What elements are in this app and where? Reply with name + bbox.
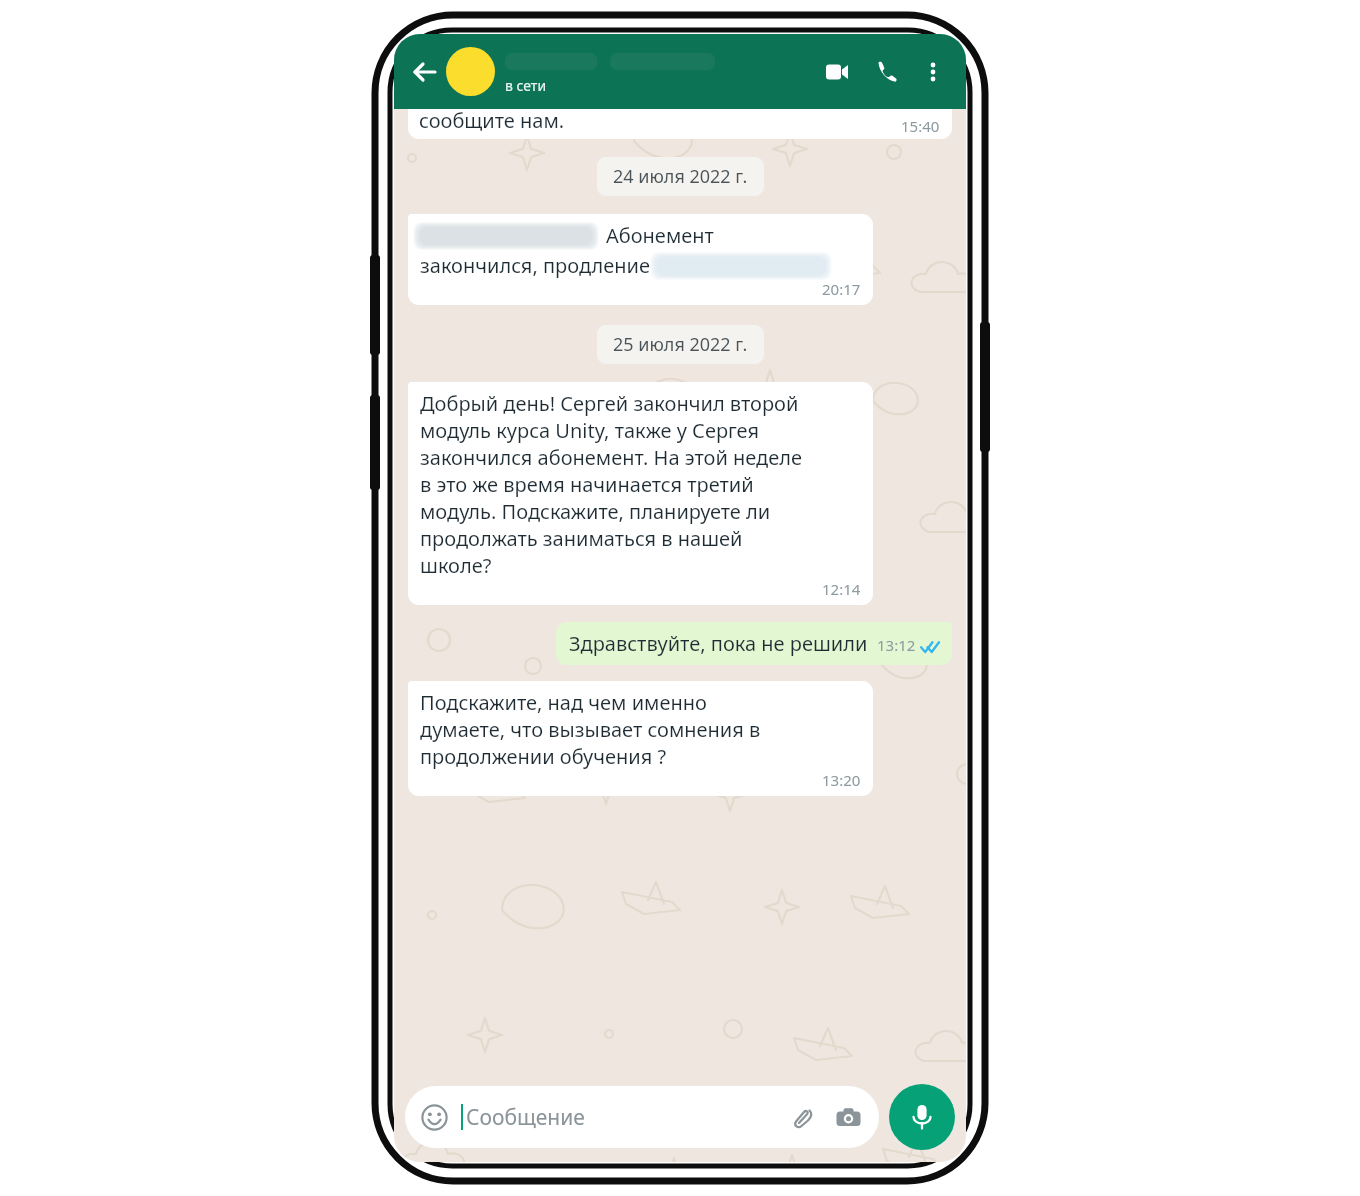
staticText: Подскажите, над чем именно думаете, что … [420,689,761,770]
staticText: Здравствуйте, пока не решили [569,630,868,657]
button[interactable]: Back [406,53,444,91]
button[interactable]: 25 июля 2022 г. [597,325,764,364]
button[interactable]: Добрый день! Сергей закончил второй моду… [408,382,873,605]
staticText: 12:14 [822,579,861,599]
staticText: закончился, продление [420,252,651,279]
button[interactable]: Attach [787,1100,821,1134]
button[interactable]: Camera [831,1100,865,1134]
staticText: 13:20 [822,770,861,790]
button[interactable]: More options [914,53,952,91]
button[interactable]: Подскажите, над чем именно думаете, что … [408,681,873,796]
button[interactable]: в сети [505,48,816,95]
button[interactable]: Emoji [419,1102,449,1132]
button[interactable]: Voice call [866,51,908,93]
staticText: в сети [505,76,547,95]
button[interactable]: 24 июля 2022 г. [597,157,764,196]
staticText: Абонемент [606,222,714,249]
button[interactable]: Video call [816,51,858,93]
staticText: 24 июля 2022 г. [613,164,748,189]
button[interactable]: сообщите нам. [408,109,952,139]
button[interactable]: Абонемент [408,214,873,305]
staticText: 20:17 [822,279,861,299]
staticText: Добрый день! Сергей закончил второй моду… [420,390,803,579]
staticText: 15:40 [901,116,940,136]
button[interactable]: Contact avatar [446,47,495,96]
button[interactable]: Emoji [405,1086,879,1148]
button[interactable]: Record voice message [889,1084,955,1150]
button[interactable]: Здравствуйте, пока не решили [556,622,952,665]
staticText: сообщите нам. [419,109,565,134]
staticText: 13:12 [877,635,916,655]
staticText: 25 июля 2022 г. [613,332,748,357]
staticText: Сообщение [466,1103,585,1132]
